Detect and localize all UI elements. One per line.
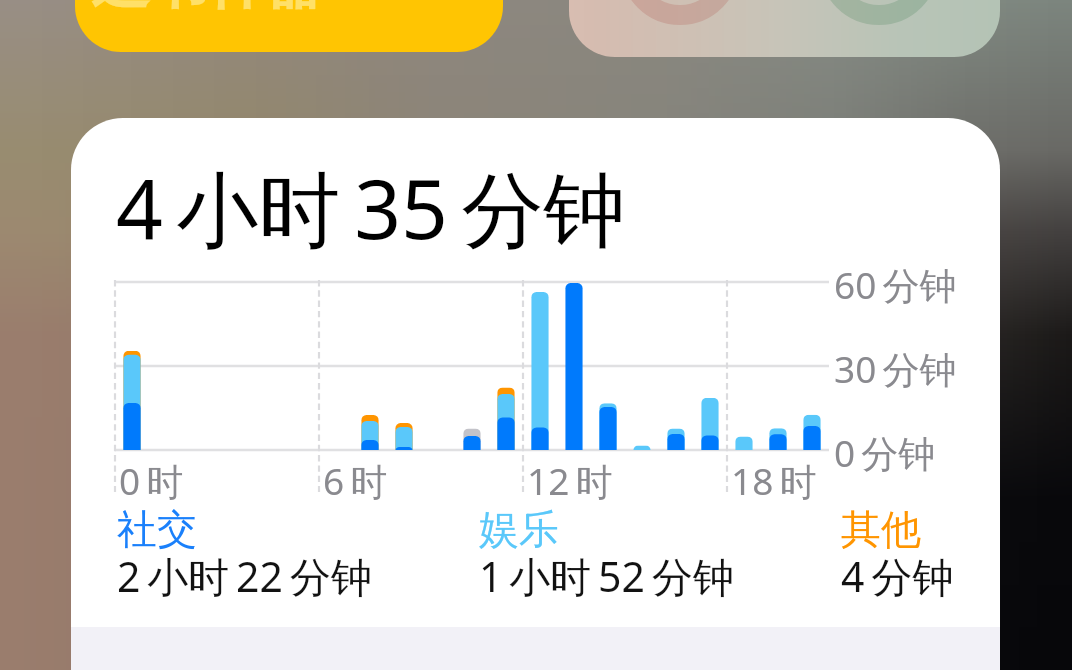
staticText: 4 小时 35 分钟 [116,151,626,263]
staticText: 0 时 [119,455,184,506]
staticText: 0 分钟 [834,427,936,478]
staticText: 社交 [117,504,197,554]
button[interactable]: 其他 [841,504,954,560]
staticText: 1 小时 52 分钟 [479,548,734,604]
staticText: 追书神器 [91,0,323,19]
staticText: 60 分钟 [834,259,957,310]
button[interactable]: 社交 [117,504,372,560]
staticText: 12 时 [527,455,613,506]
staticText: 其他 [841,504,921,554]
staticText: 18 时 [731,455,817,506]
button[interactable]: 追书神器 [75,0,503,52]
button[interactable]: 娱乐 [479,504,734,560]
button[interactable]: 4 小时 35 分钟 [71,118,1000,670]
staticText: 娱乐 [479,504,559,554]
staticText: 30 分钟 [834,343,957,394]
staticText: 2 小时 22 分钟 [117,548,372,604]
staticText: 6 时 [323,455,388,506]
staticText: 4 分钟 [841,548,954,604]
button[interactable] [569,0,1000,57]
